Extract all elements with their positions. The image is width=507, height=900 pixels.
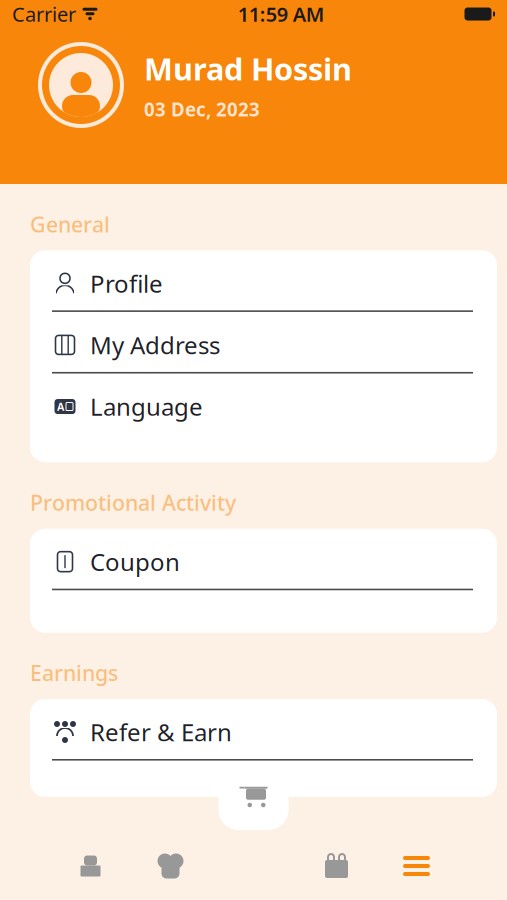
button[interactable]: Refer & Earn [30,713,497,775]
button[interactable]: Orders [296,832,376,900]
button[interactable]: Menu [376,832,456,900]
staticText: Coupon [90,546,180,578]
staticText: Murad Hossin [144,48,352,89]
staticText: Promotional Activity [30,488,236,517]
button[interactable]: Coupon [30,543,497,604]
button[interactable]: Profile [30,264,497,326]
staticText: 03 Dec, 2023 [144,97,260,122]
staticText: A [57,399,64,414]
button[interactable]: Favorites [130,832,210,900]
staticText: My Address [90,329,220,361]
staticText: Earnings [30,659,118,687]
staticText: Profile [90,267,163,299]
button[interactable]: A [30,387,497,449]
button[interactable]: Home [50,832,130,900]
staticText: Carrier [12,1,76,27]
button[interactable]: Cart [218,764,288,830]
button[interactable]: My Address [30,326,497,387]
staticText: General [30,210,110,238]
staticText: Refer & Earn [90,716,232,748]
staticText: Language [90,391,203,422]
staticText: 11:59 AM [238,1,325,27]
